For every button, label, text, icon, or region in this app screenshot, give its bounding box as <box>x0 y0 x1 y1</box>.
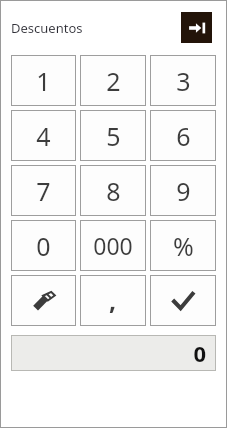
button[interactable]: % <box>150 220 216 271</box>
button[interactable]: Aceptar <box>150 275 216 326</box>
button[interactable]: 0 <box>11 335 216 371</box>
button[interactable]: 0 <box>11 220 76 271</box>
staticText: % <box>173 229 194 263</box>
button[interactable]: 1 <box>11 55 76 106</box>
button[interactable]: 4 <box>11 110 76 161</box>
staticText: 3 <box>176 64 191 98</box>
staticText: 7 <box>36 174 51 208</box>
button[interactable]: Borrar <box>11 275 76 326</box>
staticText: 0 <box>36 229 51 263</box>
staticText: 5 <box>106 119 121 153</box>
button[interactable]: 9 <box>150 165 216 216</box>
button[interactable]: 3 <box>150 55 216 106</box>
button[interactable]: 5 <box>80 110 146 161</box>
staticText: 000 <box>93 230 133 261</box>
button[interactable]: 8 <box>80 165 146 216</box>
staticText: 9 <box>176 174 191 208</box>
staticText: 4 <box>36 119 51 153</box>
button[interactable]: 7 <box>11 165 76 216</box>
button[interactable]: 000 <box>80 220 146 271</box>
staticText: 8 <box>106 174 121 208</box>
staticText: 2 <box>106 64 121 98</box>
staticText: 0 <box>193 338 206 368</box>
staticText: Descuentos <box>11 19 83 37</box>
staticText: , <box>109 283 117 317</box>
button[interactable]: , <box>80 275 146 326</box>
button[interactable]: Siguiente campo <box>181 12 212 43</box>
button[interactable]: 6 <box>150 110 216 161</box>
button[interactable]: 2 <box>80 55 146 106</box>
staticText: 1 <box>36 64 51 98</box>
staticText: 6 <box>176 119 191 153</box>
